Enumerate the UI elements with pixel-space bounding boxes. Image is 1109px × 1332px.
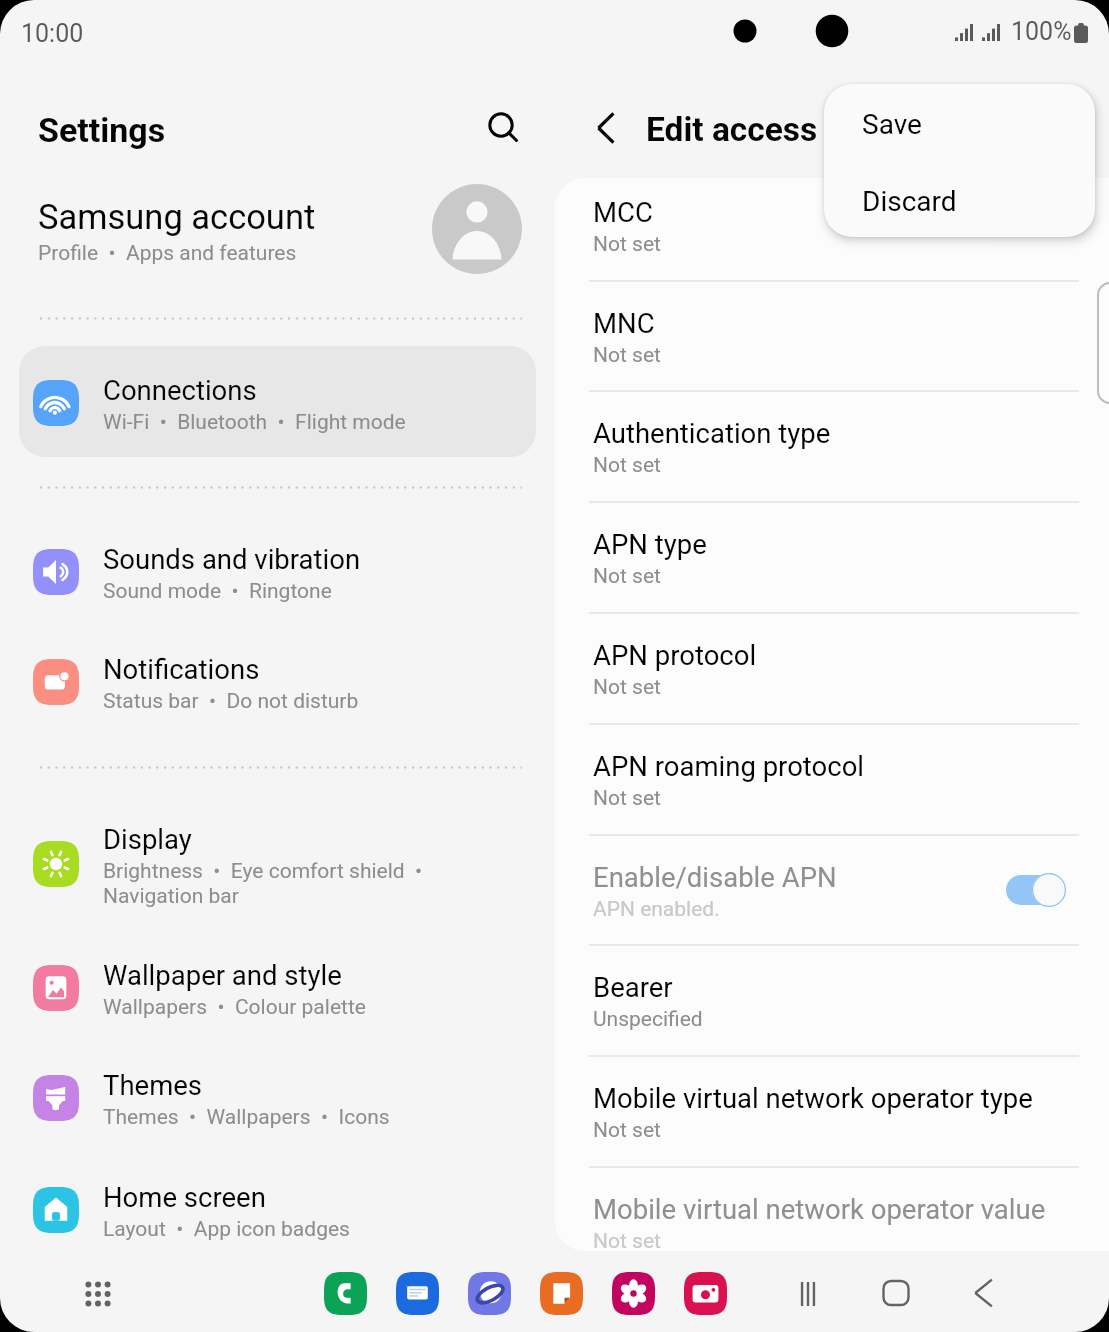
button[interactable]: MNC (555, 280, 1109, 391)
staticText: Save (862, 108, 922, 141)
button[interactable]: APN roaming protocol (555, 723, 1109, 834)
staticText: Sounds and vibration (103, 543, 361, 575)
staticText: APN enabled. (593, 897, 720, 922)
staticText: Enable/disable APN (593, 861, 837, 893)
button[interactable]: Enable/disable APN (555, 834, 1109, 945)
button[interactable]: Back (955, 1264, 1012, 1321)
staticText: Unspecified (593, 1007, 703, 1032)
staticText: Wallpapers • Colour palette (103, 995, 366, 1020)
button[interactable]: Wallpaper and style (19, 932, 536, 1043)
button[interactable]: Save (824, 84, 1095, 160)
button[interactable]: Mobile virtual network operator value (555, 1166, 1109, 1251)
staticText: Mobile virtual network operator value (593, 1193, 1046, 1225)
staticText: Discard (862, 185, 957, 218)
staticText: Wi-Fi • Bluetooth • Flight mode (103, 410, 406, 435)
staticText: Mobile virtual network operator type (593, 1082, 1033, 1114)
button[interactable]: APN protocol (555, 612, 1109, 723)
staticText: Profile • Apps and features (38, 241, 297, 266)
button[interactable]: Sounds and vibration (19, 516, 536, 627)
button[interactable]: Mobile virtual network operator type (555, 1055, 1109, 1166)
staticText: Wallpaper and style (103, 959, 342, 991)
button[interactable]: camera (684, 1272, 727, 1315)
staticText: Brightness • Eye comfort shield • (103, 859, 423, 884)
button[interactable]: Connections (19, 347, 536, 458)
staticText: Not set (593, 1118, 661, 1143)
button[interactable]: MCC (555, 178, 1109, 280)
button[interactable]: phone (324, 1272, 367, 1315)
staticText: Samsung account (38, 197, 316, 237)
button[interactable]: Apps (74, 1270, 122, 1318)
staticText: Settings (38, 110, 166, 150)
staticText: Not set (593, 1229, 661, 1251)
staticText: Connections (103, 374, 257, 406)
staticText: 100% (1011, 17, 1072, 46)
button[interactable]: internet (468, 1272, 511, 1315)
button[interactable]: notes (540, 1272, 583, 1315)
staticText: APN roaming protocol (593, 750, 865, 782)
staticText: APN type (593, 528, 707, 560)
staticText: 10:00 (21, 19, 84, 48)
staticText: Edit access point (646, 110, 903, 149)
staticText: Notifications (103, 653, 260, 685)
staticText: Not set (593, 453, 661, 478)
staticText: Bearer (593, 971, 673, 1003)
staticText: Layout • App icon badges (103, 1217, 350, 1242)
staticText: Sound mode • Ringtone (103, 579, 332, 604)
button[interactable]: Notifications (19, 626, 536, 737)
staticText: Themes (103, 1069, 203, 1101)
staticText: Navigation bar (103, 884, 239, 907)
button[interactable]: Home screen (19, 1154, 536, 1265)
staticText: Authentication type (593, 417, 831, 449)
button[interactable]: messages (396, 1272, 439, 1315)
button[interactable]: Home (867, 1264, 924, 1321)
staticText: Not set (593, 675, 661, 700)
staticText: Themes • Wallpapers • Icons (103, 1105, 390, 1130)
button[interactable]: Bearer (555, 944, 1109, 1055)
staticText: Display (103, 823, 192, 855)
button[interactable]: galaxy (612, 1272, 655, 1315)
staticText: Not set (593, 232, 661, 257)
button[interactable]: Display (19, 796, 536, 907)
button[interactable]: Discard (824, 161, 1095, 237)
button[interactable]: Authentication type (555, 390, 1109, 501)
button[interactable]: Recents (779, 1265, 836, 1322)
staticText: Not set (593, 564, 661, 589)
button[interactable]: APN type (555, 501, 1109, 612)
button[interactable]: Enable APN (1006, 868, 1066, 912)
button[interactable]: Themes (19, 1042, 536, 1153)
button[interactable]: Back (578, 100, 634, 156)
staticText: Not set (593, 343, 661, 368)
staticText: Home screen (103, 1181, 266, 1213)
staticText: MNC (593, 307, 655, 339)
staticText: APN protocol (593, 639, 757, 671)
button[interactable]: Samsung account (0, 180, 555, 280)
staticText: Status bar • Do not disturb (103, 689, 359, 714)
staticText: Not set (593, 786, 661, 811)
button[interactable]: Search (472, 96, 524, 148)
staticText: MCC (593, 196, 653, 228)
